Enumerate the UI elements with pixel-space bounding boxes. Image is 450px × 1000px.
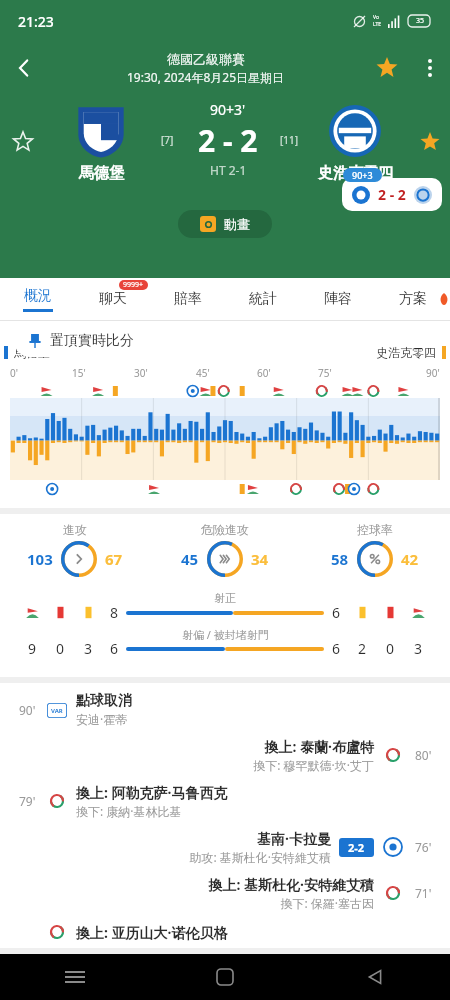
staticText: 30' xyxy=(134,366,148,380)
staticText: 聊天 xyxy=(99,290,127,308)
staticText: 21:23 xyxy=(18,12,54,31)
staticText: 2-2 xyxy=(348,840,365,855)
button[interactable]: 置頂實時比分 xyxy=(14,325,148,357)
staticText: 90' xyxy=(19,702,36,718)
staticText: 45 xyxy=(181,549,199,569)
staticText: 換下: 保羅·塞古因 xyxy=(280,895,374,911)
button[interactable]: 控球率 xyxy=(300,522,450,577)
staticText: 射正 xyxy=(214,591,236,605)
staticText: 統計 xyxy=(249,290,277,308)
staticText: 6 xyxy=(102,639,126,658)
staticText: 0 xyxy=(46,639,74,658)
staticText: 80' xyxy=(415,747,432,763)
staticText: 79' xyxy=(19,793,36,809)
button[interactable]: 聊天 xyxy=(75,278,150,320)
staticText: 60' xyxy=(257,366,271,380)
staticText: 控球率 xyxy=(357,522,393,537)
staticText: 9 xyxy=(18,639,46,658)
staticText: [11] xyxy=(280,133,299,147)
button[interactable]: 概況 xyxy=(0,278,75,320)
staticText: 67 xyxy=(105,549,123,569)
staticText: 安迪·霍蒂 xyxy=(76,711,128,727)
staticText: 德國乙級聯賽 xyxy=(167,51,245,67)
staticText: 換下: 康納·基林比基 xyxy=(76,803,182,819)
button[interactable]: 換上: 泰蘭·布盧特 xyxy=(0,732,450,778)
staticText: 史浩克零四 xyxy=(318,164,393,183)
staticText: 動畫 xyxy=(224,216,250,232)
button[interactable]: Home xyxy=(150,954,300,1000)
staticText: 35 xyxy=(416,16,425,26)
staticText: 射偏 / 被封堵射門 xyxy=(182,627,269,642)
staticText: 概況 xyxy=(24,287,52,305)
staticText: 90+3 xyxy=(352,169,373,181)
staticText: 2 - 2 xyxy=(378,185,406,204)
staticText: 8 xyxy=(102,603,126,622)
staticText: HT 2-1 xyxy=(210,162,247,178)
staticText: 58 xyxy=(331,549,349,569)
staticText: 71' xyxy=(415,885,432,901)
staticText: 換上: 基斯杜化·安特維艾積 xyxy=(208,875,374,894)
staticText: Vo LTE xyxy=(373,14,382,28)
button[interactable]: Back xyxy=(0,44,48,92)
staticText: 90+3' xyxy=(210,100,246,119)
staticText: 換上: 阿勒克萨·马鲁西克 xyxy=(76,783,228,802)
button[interactable]: Back xyxy=(300,954,450,1000)
staticText: 103 xyxy=(27,549,53,569)
staticText: 史浩克零四 xyxy=(376,345,436,360)
button[interactable]: 方案 xyxy=(375,278,450,320)
button[interactable]: 換上: 亚历山大·诺伦贝格 xyxy=(0,916,450,948)
button[interactable]: 基南·卡拉曼 xyxy=(0,824,450,870)
staticText: 馬德堡 xyxy=(14,345,50,360)
button[interactable]: 進攻 xyxy=(0,522,150,577)
staticText: [7] xyxy=(161,133,174,147)
staticText: 42 xyxy=(401,549,419,569)
staticText: 馬德堡 xyxy=(79,164,124,183)
button[interactable]: 動畫 xyxy=(178,210,272,238)
staticText: 0' xyxy=(10,366,18,380)
staticText: 賠率 xyxy=(174,290,202,308)
button[interactable]: 陣容 xyxy=(300,278,375,320)
staticText: 換上: 亚历山大·诺伦贝格 xyxy=(76,923,228,942)
staticText: 6 xyxy=(324,639,348,658)
button[interactable]: 賠率 xyxy=(150,278,225,320)
button[interactable]: 統計 xyxy=(225,278,300,320)
button[interactable]: Recents xyxy=(0,954,150,1000)
button[interactable]: 危險進攻 xyxy=(150,522,300,577)
button[interactable]: 換上: 基斯杜化·安特維艾積 xyxy=(0,870,450,916)
button[interactable]: 79' xyxy=(0,778,450,824)
staticText: 2 - 2 xyxy=(198,120,258,161)
staticText: 3 xyxy=(74,639,102,658)
staticText: 換下: 穆罕默德·坎·艾丁 xyxy=(253,757,374,773)
staticText: 3 xyxy=(404,639,432,658)
button[interactable]: Favourite home team xyxy=(0,100,46,210)
staticText: 換上: 泰蘭·布盧特 xyxy=(264,737,374,756)
button[interactable]: More options xyxy=(410,48,450,88)
staticText: 0 xyxy=(376,639,404,658)
staticText: 危險進攻 xyxy=(201,522,249,537)
staticText: 陣容 xyxy=(324,290,352,308)
staticText: 方案 xyxy=(399,290,427,308)
staticText: 75' xyxy=(318,366,332,380)
staticText: VAR xyxy=(51,707,63,715)
staticText: 9999+ xyxy=(123,280,144,290)
staticText: 助攻: 基斯杜化·安特維艾積 xyxy=(189,849,331,865)
staticText: 置頂實時比分 xyxy=(50,332,134,350)
staticText: 6 xyxy=(324,603,348,622)
staticText: 34 xyxy=(251,549,269,569)
staticText: 進攻 xyxy=(63,522,87,537)
staticText: 19:30, 2024年8月25日星期日 xyxy=(127,69,285,85)
staticText: 90' xyxy=(426,366,440,380)
staticText: 基南·卡拉曼 xyxy=(257,829,331,848)
staticText: 2 xyxy=(348,639,376,658)
button[interactable]: Favourite xyxy=(364,45,410,91)
button[interactable]: 90' xyxy=(0,687,450,732)
staticText: 點球取消 xyxy=(76,692,132,710)
button[interactable]: Favourite away team xyxy=(410,100,450,210)
staticText: 15' xyxy=(72,366,86,380)
staticText: 76' xyxy=(415,839,432,855)
button[interactable]: 2 - 2 xyxy=(342,178,442,211)
staticText: 45' xyxy=(196,366,210,380)
